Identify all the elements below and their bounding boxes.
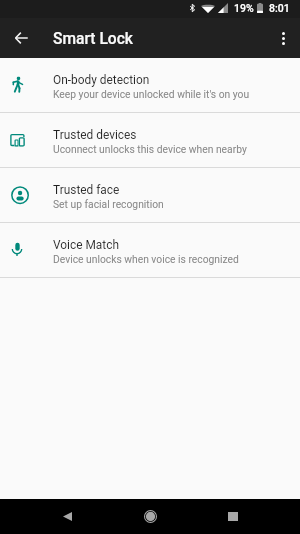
staticText: Set up facial recognition: [53, 198, 164, 210]
button[interactable]: Back: [47, 499, 87, 534]
staticText: Voice Match: [53, 238, 119, 252]
button[interactable]: Voice Match: [0, 223, 300, 277]
staticText: Trusted face: [53, 183, 120, 197]
staticText: Keep your device unlocked while it's on …: [53, 88, 250, 100]
staticText: On-body detection: [53, 73, 150, 87]
staticText: 8:01: [269, 2, 290, 14]
button[interactable]: Navigate up: [0, 18, 41, 58]
staticText: Smart Lock: [53, 30, 134, 48]
button[interactable]: Home: [130, 499, 170, 534]
staticText: 19%: [234, 2, 254, 14]
button[interactable]: More options: [266, 18, 300, 58]
button[interactable]: Trusted devices: [0, 113, 300, 167]
staticText: Uconnect unlocks this device when nearby: [53, 143, 247, 155]
staticText: Device unlocks when voice is recognized: [53, 253, 239, 265]
staticText: Trusted devices: [53, 128, 137, 142]
button[interactable]: On-body detection: [0, 58, 300, 112]
button[interactable]: Recent apps: [213, 499, 253, 534]
button[interactable]: Trusted face: [0, 168, 300, 222]
